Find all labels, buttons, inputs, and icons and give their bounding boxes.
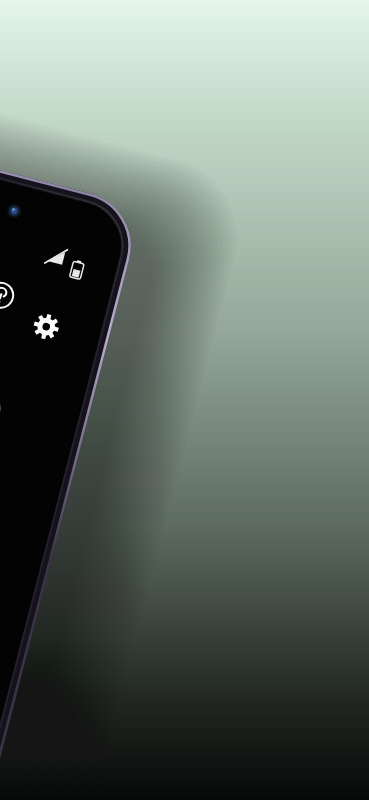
button[interactable]: Settings	[124, 218, 156, 250]
button[interactable]: Help	[86, 205, 118, 237]
button[interactable]: Preview panel	[0, 292, 132, 388]
